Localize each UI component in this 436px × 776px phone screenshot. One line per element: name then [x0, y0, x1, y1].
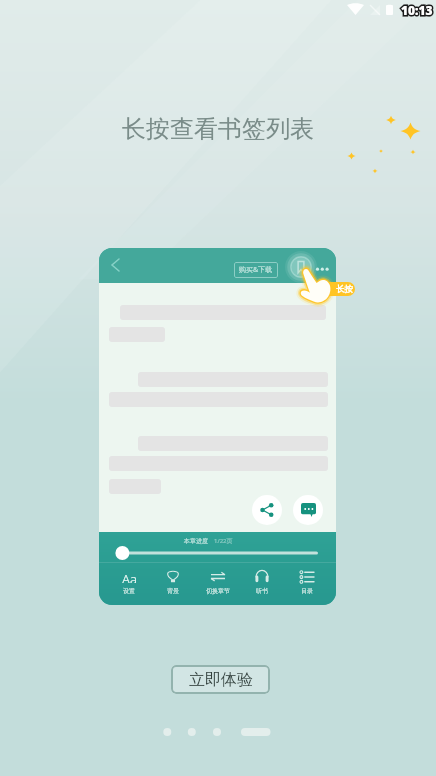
button[interactable]: 立即体验 — [171, 665, 270, 694]
button[interactable]: 切换章节 — [203, 570, 233, 596]
staticText: 目录 — [301, 587, 313, 595]
staticText: Aa — [122, 570, 137, 583]
staticText: 本章进度 — [184, 537, 208, 545]
staticText: 切换章节 — [206, 587, 230, 595]
button[interactable]: 背景 — [158, 570, 188, 596]
staticText: 10:13 — [401, 2, 433, 18]
staticText: 听书 — [256, 587, 268, 595]
staticText: 长按查看书签列表 — [122, 114, 314, 144]
button[interactable]: Long press hint — [313, 282, 355, 296]
button[interactable]: Aa — [114, 570, 144, 596]
button[interactable]: 购买&下载 — [234, 262, 278, 278]
staticText: 10:13 — [401, 2, 433, 18]
staticText: 背景 — [167, 587, 179, 595]
staticText: 立即体验 — [189, 670, 253, 690]
button[interactable]: Share — [252, 495, 282, 525]
button[interactable]: 听书 — [247, 570, 277, 596]
button[interactable]: More options — [315, 263, 329, 273]
staticText: 设置 — [123, 587, 135, 595]
staticText: 购买&下载 — [239, 265, 273, 275]
button[interactable]: Back — [102, 252, 128, 278]
staticText: 长按 — [336, 284, 353, 295]
button[interactable]: 目录 — [292, 570, 322, 596]
button[interactable]: Bookmarks — [285, 251, 317, 283]
staticText: 1/22页 — [214, 537, 233, 545]
button[interactable]: Comments — [293, 495, 323, 525]
